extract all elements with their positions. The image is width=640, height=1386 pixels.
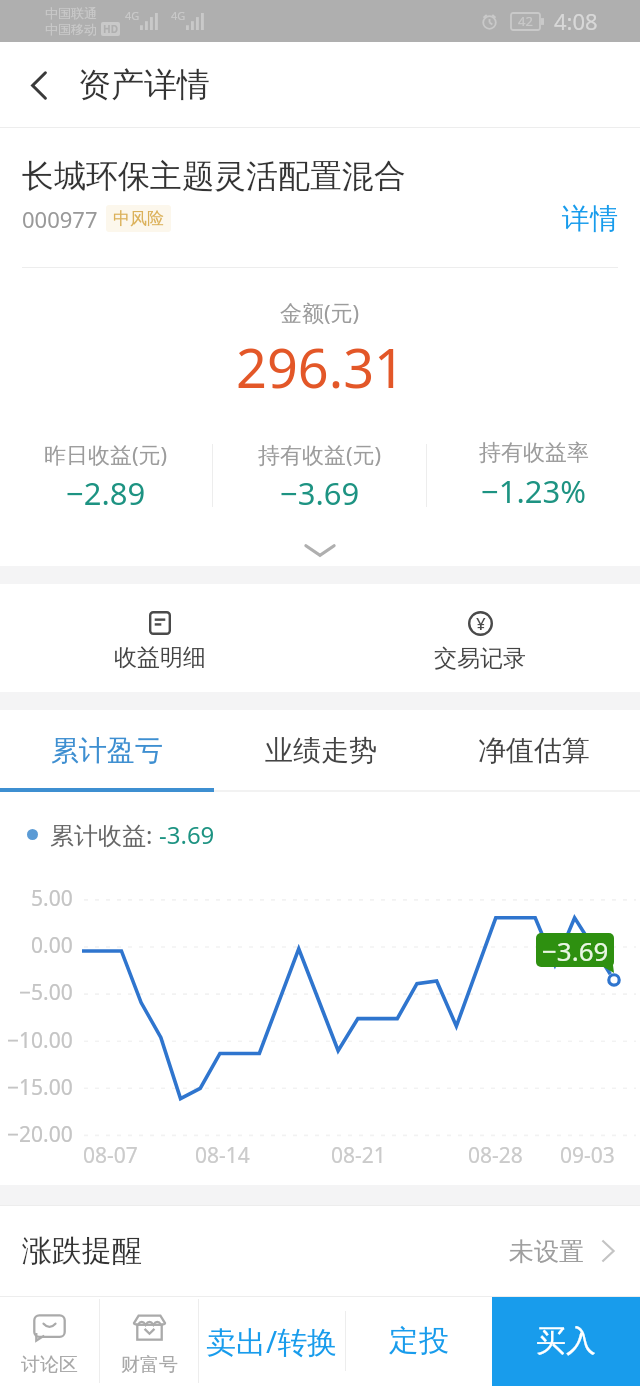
staticText: 资产详情 (78, 64, 210, 106)
button[interactable]: 详情 (562, 199, 618, 238)
staticText: 买入 (536, 1322, 596, 1360)
staticText: 中风险 (113, 208, 164, 229)
staticText: −5.00 (19, 978, 73, 1007)
staticText: ¥ (476, 612, 486, 635)
staticText: 4G (171, 8, 186, 23)
staticText: 涨跌提醒 (22, 1232, 142, 1270)
button[interactable]: 定投 (346, 1296, 492, 1386)
button[interactable]: 卖出/转换 (199, 1296, 345, 1386)
staticText: -3.69 (159, 818, 215, 851)
staticText: 42 (518, 12, 533, 30)
staticText: 交易记录 (434, 644, 526, 673)
staticText: 长城环保主题灵活配置混合 (22, 156, 406, 196)
staticText: 业绩走势 (265, 733, 377, 768)
staticText: 讨论区 (21, 1353, 78, 1377)
button[interactable]: 财富号 (100, 1296, 198, 1386)
staticText: 金额(元) (280, 297, 360, 327)
button[interactable]: 收益明细 (0, 591, 320, 692)
staticText: 0.00 (31, 931, 73, 960)
staticText: 持有收益(元) (258, 439, 382, 469)
button[interactable]: 累计盈亏 (0, 710, 214, 792)
staticText: 净值估算 (478, 733, 590, 768)
staticText: 4:08 (554, 6, 598, 36)
staticText: −20.00 (7, 1120, 73, 1149)
button[interactable]: Back (0, 42, 78, 128)
staticText: −3.69 (542, 933, 609, 967)
staticText: 08-28 (468, 1141, 523, 1170)
staticText: 296.31 (236, 330, 405, 404)
staticText: 详情 (562, 201, 618, 236)
staticText: 累计盈亏 (51, 733, 163, 768)
staticText: 财富号 (121, 1353, 178, 1377)
button[interactable]: 业绩走势 (214, 710, 427, 792)
staticText: 累计收益: (50, 818, 159, 851)
staticText: −2.89 (66, 472, 146, 511)
staticText: 中国联通 (45, 5, 97, 21)
button[interactable]: 讨论区 (0, 1296, 99, 1386)
staticText: HD (103, 22, 118, 36)
staticText: 000977 (22, 204, 98, 234)
staticText: 卖出/转换 (206, 1321, 338, 1362)
staticText: 09-03 (560, 1141, 615, 1170)
staticText: −1.23% (481, 470, 586, 511)
staticText: 08-14 (195, 1141, 250, 1170)
staticText: 持有收益率 (479, 439, 589, 467)
staticText: 5.00 (31, 884, 73, 913)
staticText: −10.00 (7, 1026, 73, 1055)
staticText: 昨日收益(元) (44, 439, 168, 469)
staticText: 4G (125, 8, 140, 23)
button[interactable]: 涨跌提醒 (0, 1206, 640, 1296)
button[interactable]: ¥ (320, 591, 640, 692)
button[interactable]: 买入 (492, 1296, 640, 1386)
staticText: −15.00 (7, 1073, 73, 1102)
staticText: 08-21 (331, 1141, 386, 1170)
staticText: −3.69 (280, 472, 360, 511)
staticText: 中国移动 (45, 21, 97, 37)
staticText: 未设置 (509, 1236, 584, 1267)
staticText: 08-07 (83, 1141, 138, 1170)
staticText: 定投 (389, 1322, 449, 1360)
button[interactable]: 净值估算 (427, 710, 640, 792)
staticText: 收益明细 (114, 643, 206, 672)
